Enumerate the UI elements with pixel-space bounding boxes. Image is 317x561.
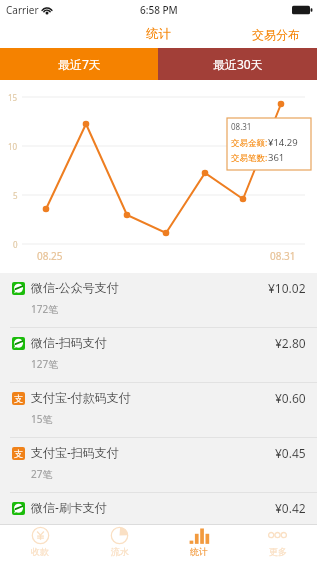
staticText: 支付宝-付款码支付 (31, 389, 131, 405)
staticText: 统计 (190, 546, 208, 557)
staticText: 27笔 (31, 467, 53, 481)
staticText: 交易分布 (252, 27, 300, 42)
staticText: ¥0.60 (275, 390, 306, 406)
staticText: ¥10.02 (268, 280, 306, 296)
staticText: 更多 (269, 546, 287, 557)
staticText: 支付宝-扫码支付 (31, 444, 119, 460)
staticText: 微信-扫码支付 (31, 334, 107, 350)
staticText: 127笔 (31, 357, 59, 371)
staticText: 交易金额: (231, 137, 268, 149)
staticText: 交易笔数: (231, 152, 268, 164)
button[interactable]: 支 (0, 383, 317, 437)
button[interactable]: 收款 (0, 525, 80, 561)
button[interactable]: 更多 (238, 525, 317, 561)
staticText: 10 (8, 141, 18, 152)
button[interactable]: 微信-扫码支付 (0, 328, 317, 382)
staticText: ¥14.29 (268, 136, 298, 149)
staticText: ¥0.42 (275, 500, 306, 516)
staticText: 172笔 (31, 302, 59, 316)
button[interactable]: 交易分布 (242, 23, 317, 46)
button[interactable]: 微信-公众号支付 (0, 273, 317, 327)
staticText: 0 (13, 239, 18, 250)
staticText: 6:58 PM (140, 3, 178, 17)
staticText: 微信-刷卡支付 (31, 499, 107, 515)
button[interactable]: 支 (0, 438, 317, 492)
staticText: 15笔 (31, 412, 53, 426)
staticText: 微信-公众号支付 (31, 279, 119, 295)
button[interactable]: 最近30天 (158, 48, 317, 80)
staticText: 5 (13, 190, 18, 201)
staticText: 361 (268, 151, 285, 164)
staticText: 最近30天 (213, 56, 263, 72)
button[interactable]: 最近7天 (0, 48, 158, 80)
staticText: 统计 (146, 26, 171, 42)
staticText: 支 (14, 393, 23, 404)
staticText: 15 (8, 92, 18, 103)
staticText: ¥0.45 (275, 445, 306, 461)
staticText: ¥2.80 (275, 335, 306, 351)
button[interactable]: 流水 (80, 525, 159, 561)
staticText: 08.31 (231, 121, 252, 132)
staticText: Carrier (6, 3, 39, 17)
staticText: 收款 (31, 546, 49, 557)
staticText: 最近7天 (58, 56, 101, 72)
button[interactable]: 统计 (138, 22, 179, 46)
button[interactable]: 统计 (159, 525, 238, 561)
staticText: 08.25 (37, 249, 63, 263)
staticText: 流水 (111, 546, 129, 557)
staticText: 08.31 (270, 249, 296, 263)
staticText: 支 (14, 448, 23, 459)
button[interactable]: 微信-刷卡支付 (0, 493, 317, 524)
